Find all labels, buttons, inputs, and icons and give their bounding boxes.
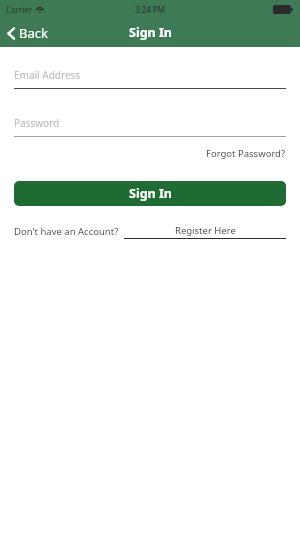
staticText: Back <box>19 24 48 42</box>
other: Wi-Fi <box>36 6 44 13</box>
other: Battery <box>273 5 293 14</box>
button[interactable]: Password <box>14 116 286 137</box>
button[interactable]: Email Address <box>14 68 286 89</box>
staticText: Email Address <box>14 68 81 82</box>
other: Back <box>7 27 15 40</box>
staticText: Password <box>14 116 60 130</box>
button[interactable]: Sign In <box>14 181 286 206</box>
staticText: Forgot Password? <box>206 147 286 160</box>
staticText: Sign In <box>129 185 172 202</box>
staticText: Carrier <box>6 4 33 15</box>
staticText: Sign In <box>129 24 172 41</box>
staticText: 3:24 PM <box>135 4 166 15</box>
button[interactable]: Register Here <box>124 224 286 239</box>
staticText: Don't have an Account? <box>14 225 119 238</box>
button[interactable]: Back <box>0 20 58 46</box>
button[interactable]: Forgot Password? <box>206 145 286 162</box>
staticText: Register Here <box>175 224 236 237</box>
